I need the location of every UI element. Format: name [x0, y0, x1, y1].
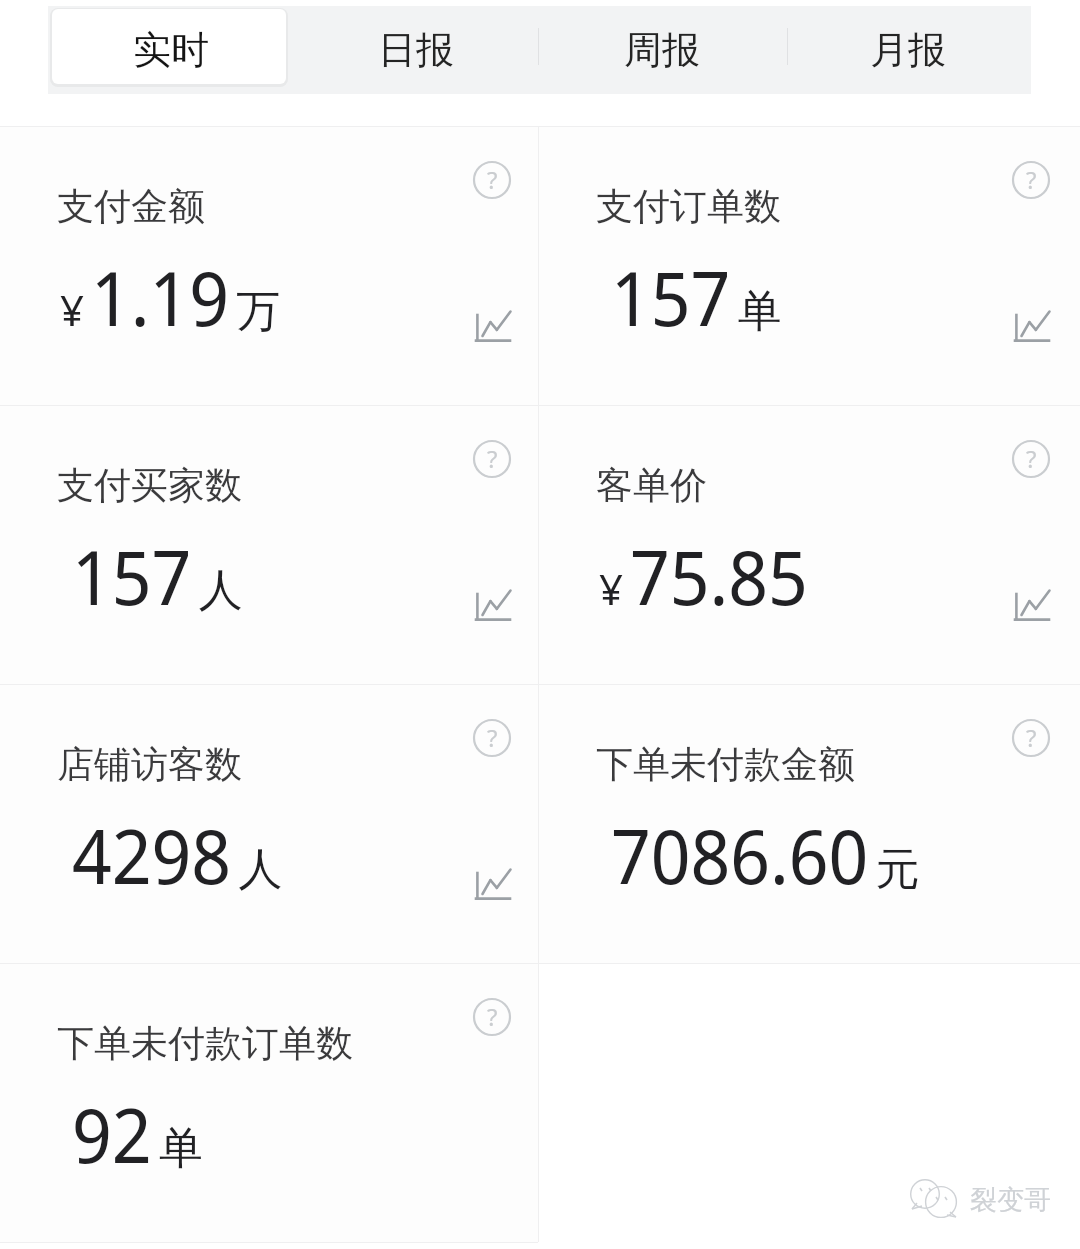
- button[interactable]: Help: [0, 685, 538, 963]
- button[interactable]: Trend chart: [1005, 300, 1061, 352]
- button[interactable]: Help: [1007, 714, 1055, 762]
- staticText: ?: [487, 442, 498, 475]
- staticText: 裂变哥: [970, 1183, 1051, 1217]
- staticText: 日报: [378, 26, 454, 74]
- staticText: 下单未付款订单数: [57, 1020, 353, 1067]
- staticText: 店铺访客数: [57, 741, 242, 788]
- staticText: 157 人: [72, 526, 243, 627]
- staticText: 周报: [624, 26, 700, 74]
- staticText: ¥ 1.19 万: [60, 247, 281, 348]
- button[interactable]: Trend chart: [466, 858, 522, 910]
- button[interactable]: Help: [0, 406, 538, 684]
- button[interactable]: Help: [539, 406, 1080, 684]
- button[interactable]: Help: [539, 127, 1080, 405]
- button[interactable]: 周报: [539, 6, 785, 94]
- staticText: 实时: [133, 26, 209, 74]
- button[interactable]: Trend chart: [466, 300, 522, 352]
- staticText: ?: [1026, 721, 1037, 754]
- button[interactable]: Help: [539, 685, 1080, 963]
- button[interactable]: 实时: [48, 6, 293, 94]
- button[interactable]: Help: [468, 435, 516, 483]
- button[interactable]: Help: [1007, 156, 1055, 204]
- staticText: 支付金额: [57, 183, 205, 230]
- button[interactable]: Help: [1007, 435, 1055, 483]
- button[interactable]: Help: [0, 127, 538, 405]
- button[interactable]: Trend chart: [1005, 579, 1061, 631]
- button[interactable]: 月报: [785, 6, 1031, 94]
- button[interactable]: Help: [0, 964, 538, 1242]
- button[interactable]: Help: [468, 993, 516, 1041]
- button[interactable]: Help: [468, 714, 516, 762]
- staticText: ?: [487, 1000, 498, 1033]
- staticText: ?: [487, 163, 498, 196]
- staticText: ?: [487, 721, 498, 754]
- staticText: ¥ 75.85: [599, 526, 808, 627]
- staticText: 7086.60 元: [611, 805, 920, 906]
- staticText: ?: [1026, 442, 1037, 475]
- staticText: 下单未付款金额: [596, 741, 855, 788]
- staticText: 4298 人: [72, 805, 283, 906]
- button[interactable]: Trend chart: [466, 579, 522, 631]
- staticText: 92 单: [72, 1084, 203, 1185]
- staticText: 157 单: [611, 247, 782, 348]
- staticText: 支付买家数: [57, 462, 242, 509]
- button[interactable]: 日报: [293, 6, 539, 94]
- staticText: ?: [1026, 163, 1037, 196]
- staticText: 客单价: [596, 462, 707, 509]
- staticText: 月报: [870, 26, 946, 74]
- button[interactable]: Help: [468, 156, 516, 204]
- staticText: 支付订单数: [596, 183, 781, 230]
